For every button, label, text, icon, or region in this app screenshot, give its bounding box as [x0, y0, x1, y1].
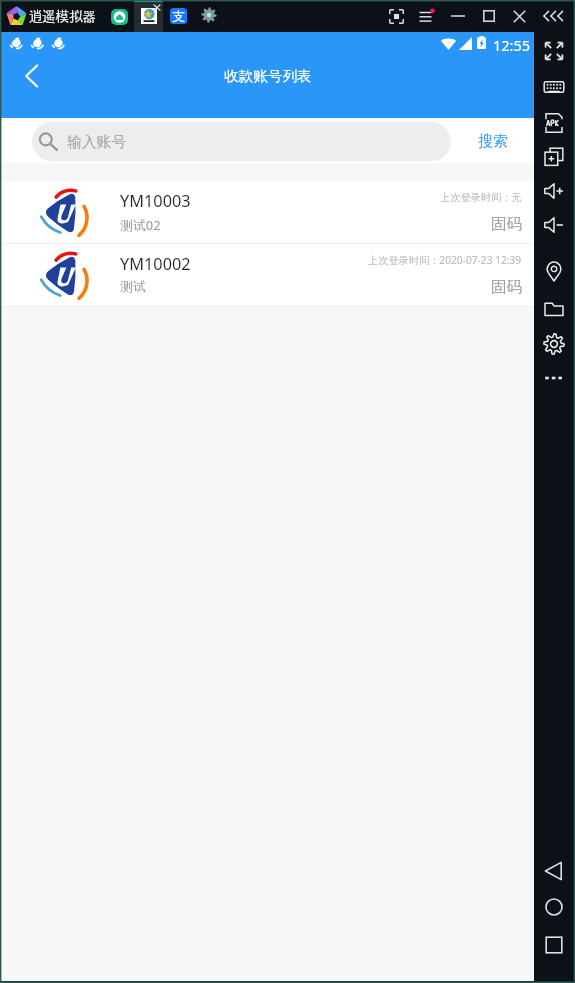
- button[interactable]: 输入账号: [32, 122, 451, 161]
- button[interactable]: Back: [8, 53, 54, 99]
- button[interactable]: Screenshot: [389, 9, 404, 24]
- button[interactable]: More options: [543, 367, 565, 389]
- button[interactable]: YM10002: [1, 244, 534, 306]
- button[interactable]: 搜索: [451, 118, 534, 163]
- button[interactable]: Maximise: [483, 10, 495, 22]
- staticText: 上次登录时间：2020-07-23 12:39: [368, 253, 522, 267]
- button[interactable]: Volume down: [543, 214, 565, 236]
- staticText: 收款账号列表: [224, 67, 312, 85]
- button[interactable]: Multi instance: [543, 146, 565, 168]
- staticText: 支: [172, 8, 185, 24]
- staticText: 逍遥模拟器: [29, 8, 96, 25]
- button[interactable]: Home: [542, 895, 566, 919]
- button[interactable]: Location: [543, 261, 565, 283]
- button[interactable]: Recent apps: [542, 933, 566, 957]
- staticText: 固码: [491, 277, 522, 297]
- button[interactable]: Collapse sidebar: [543, 9, 565, 23]
- staticText: 固码: [491, 214, 522, 234]
- button[interactable]: Settings: [543, 333, 565, 355]
- button[interactable]: App tab 1: [111, 9, 128, 25]
- staticText: YM10003: [120, 190, 191, 212]
- button[interactable]: App tab 2: [141, 8, 157, 24]
- button[interactable]: App tab 3: [170, 8, 187, 24]
- staticText: YM10002: [120, 253, 191, 275]
- staticText: 上次登录时间：无: [440, 191, 522, 204]
- staticText: 输入账号: [67, 133, 127, 152]
- staticText: 搜索: [478, 132, 508, 151]
- button[interactable]: Install APK: [543, 112, 565, 134]
- button[interactable]: Back: [542, 859, 566, 883]
- button[interactable]: Emulator settings: [201, 7, 217, 23]
- button[interactable]: Shared folder: [543, 298, 565, 320]
- staticText: 测试02: [120, 216, 161, 234]
- button[interactable]: YM10003: [1, 181, 534, 243]
- staticText: 测试: [120, 279, 146, 295]
- staticText: 12:55: [493, 35, 531, 55]
- button[interactable]: Fullscreen: [543, 40, 565, 62]
- button[interactable]: Close: [513, 10, 526, 23]
- button[interactable]: Minimise: [451, 9, 465, 23]
- button[interactable]: Menu: [419, 9, 434, 24]
- button[interactable]: Volume up: [543, 180, 565, 202]
- button[interactable]: Virtual keyboard: [543, 76, 565, 98]
